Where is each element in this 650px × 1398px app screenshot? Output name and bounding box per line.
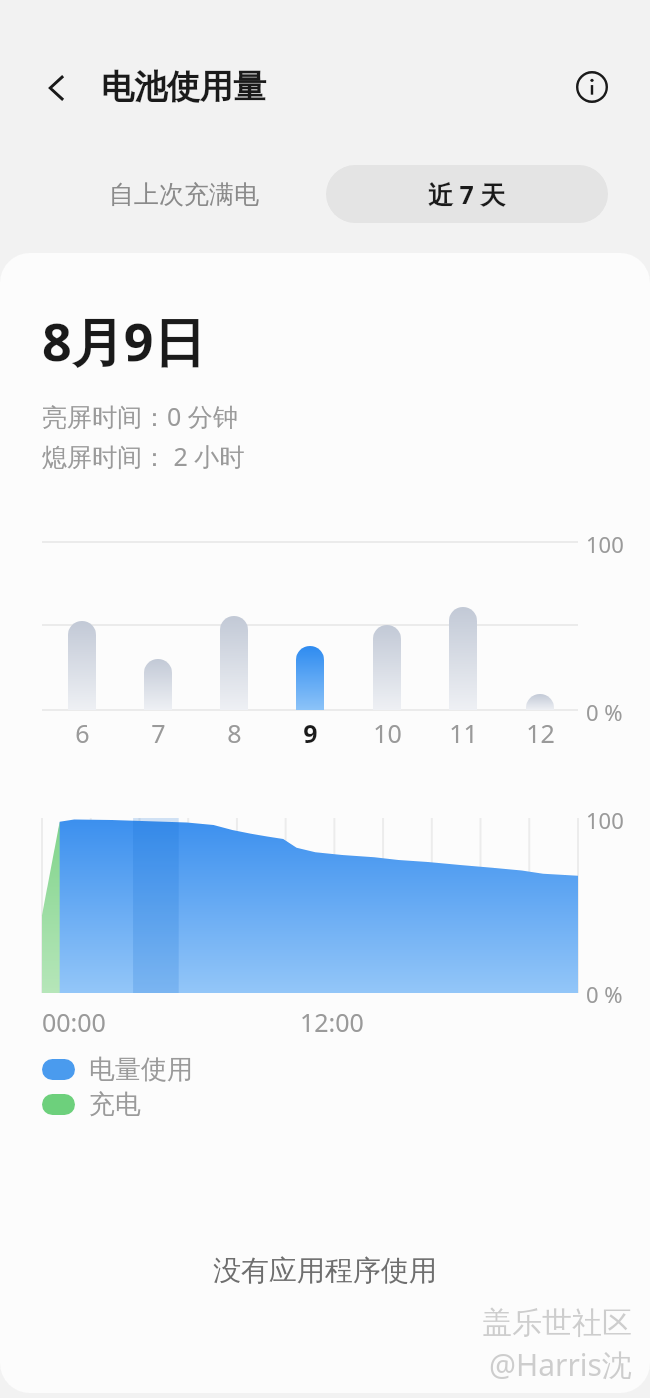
staticText: 100 (586, 529, 624, 559)
staticText: 没有应用程序使用 (213, 1253, 437, 1288)
staticText: @Harris沈 (489, 1344, 632, 1385)
staticText: 充电 (89, 1088, 141, 1121)
staticText: 0 % (586, 979, 623, 1009)
staticText: 0 % (586, 697, 623, 727)
staticText: 00:00 (42, 1005, 106, 1039)
staticText: 12 (526, 716, 555, 750)
staticText: 6 (75, 716, 90, 750)
staticText: 9 (303, 716, 318, 750)
staticText: 亮屏时间：0 分钟 (42, 399, 238, 433)
staticText: 近 7 天 (428, 177, 506, 211)
staticText: 100 (586, 805, 624, 835)
staticText: 盖乐世社区 (482, 1304, 632, 1342)
staticText: 10 (373, 716, 402, 750)
staticText: 11 (449, 716, 478, 750)
button[interactable]: Back (33, 64, 81, 112)
staticText: 电池使用量 (101, 66, 266, 108)
staticText: 自上次充满电 (109, 179, 259, 210)
staticText: 7 (151, 716, 166, 750)
button[interactable]: Information (568, 63, 616, 111)
button[interactable]: 近 7 天 (326, 165, 608, 223)
staticText: 8 (227, 716, 242, 750)
button[interactable]: 自上次充满电 (42, 165, 326, 223)
staticText: 12:00 (300, 1005, 364, 1039)
staticText: 电量使用 (89, 1053, 193, 1086)
staticText: 8月9日 (42, 305, 206, 376)
staticText: 熄屏时间： 2 小时 (42, 439, 245, 473)
